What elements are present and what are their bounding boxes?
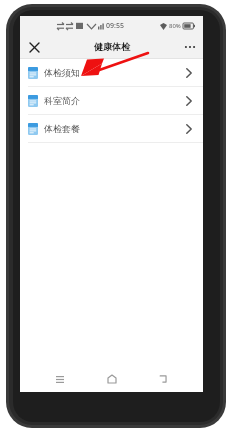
staticText: 健康体检 — [94, 41, 130, 52]
button[interactable]: Recent apps — [49, 368, 71, 390]
staticText: 体检套餐 — [44, 123, 80, 134]
staticText: 科室简介 — [44, 95, 80, 106]
button[interactable]: Home — [101, 368, 123, 390]
button[interactable]: 体检套餐 — [20, 115, 203, 142]
button[interactable]: 科室简介 — [20, 87, 203, 114]
staticText: 09:55 — [106, 21, 124, 31]
button[interactable]: Close — [24, 37, 44, 57]
staticText: 80% — [169, 22, 181, 30]
button[interactable]: More options — [180, 37, 200, 57]
button[interactable]: Back — [152, 368, 174, 390]
staticText: 体检须知 — [44, 67, 80, 78]
button[interactable]: 体检须知 — [20, 59, 203, 86]
